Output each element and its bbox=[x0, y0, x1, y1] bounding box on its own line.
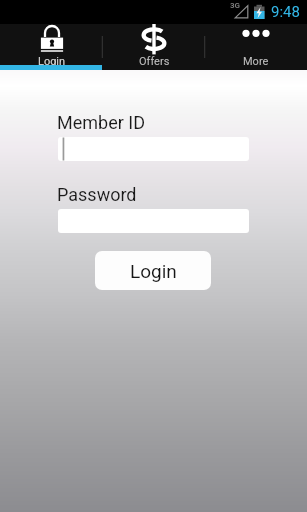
staticText: Login bbox=[130, 260, 177, 282]
other: Offers tab bbox=[139, 24, 169, 54]
staticText: Offers bbox=[139, 55, 170, 68]
other: Login tab bbox=[39, 24, 65, 54]
button[interactable] bbox=[58, 137, 249, 161]
other: More tab bbox=[241, 24, 271, 54]
button[interactable]: Login tab bbox=[0, 24, 103, 70]
staticText: More bbox=[243, 55, 269, 68]
staticText: Password bbox=[57, 184, 137, 205]
staticText: Login bbox=[38, 55, 66, 68]
staticText: Member ID bbox=[57, 112, 145, 133]
staticText: 9:48 bbox=[271, 3, 300, 21]
staticText: 3G bbox=[230, 1, 241, 10]
button[interactable]: Offers tab bbox=[103, 24, 205, 70]
button[interactable]: Login bbox=[95, 251, 211, 290]
button[interactable]: More tab bbox=[205, 24, 307, 70]
